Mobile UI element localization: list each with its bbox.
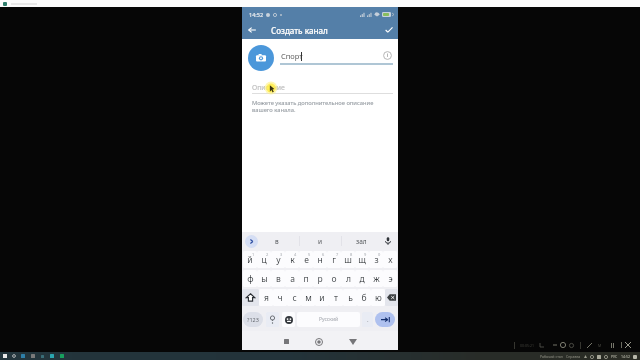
staticText: м — [305, 292, 312, 304]
button[interactable]: б — [357, 289, 371, 306]
staticText: ш — [344, 254, 352, 266]
staticText: РУС — [611, 354, 618, 359]
button[interactable]: р — [313, 270, 327, 287]
staticText: Описание — [252, 83, 285, 92]
other: Crop — [539, 343, 544, 348]
button[interactable]: Info — [381, 49, 393, 61]
staticText: п — [303, 273, 309, 285]
staticText: Можете указать дополнительное описание в… — [252, 99, 374, 114]
button[interactable]: Recents — [276, 331, 296, 350]
button[interactable]: о — [327, 270, 341, 287]
button[interactable]: Shift — [242, 289, 259, 306]
staticText: о — [331, 273, 337, 285]
button[interactable]: э — [383, 270, 397, 287]
staticText: в — [275, 237, 279, 246]
button[interactable]: Expand suggestions — [244, 232, 258, 250]
staticText: 6 — [322, 252, 325, 257]
staticText: Рабочий стол — [540, 354, 563, 359]
button[interactable]: Set channel photo — [248, 45, 274, 71]
button[interactable]: я — [259, 289, 273, 306]
staticText: в — [276, 273, 281, 285]
button[interactable]: д — [355, 270, 369, 287]
staticText: 14:52 — [249, 11, 264, 18]
staticText: и — [318, 237, 323, 246]
button[interactable]: в — [266, 232, 288, 250]
button[interactable]: . — [362, 312, 373, 327]
staticText: ж — [373, 273, 380, 285]
button[interactable]: а — [285, 270, 299, 287]
button[interactable]: зал — [350, 232, 372, 250]
button[interactable]: ц — [257, 251, 271, 268]
button[interactable]: Settings — [266, 312, 279, 327]
button[interactable]: Back — [343, 331, 363, 350]
button[interactable]: в — [271, 270, 285, 287]
staticText: э — [388, 273, 393, 285]
button[interactable]: Emoji — [282, 312, 295, 327]
button[interactable]: ь — [343, 289, 357, 306]
staticText: а — [290, 273, 295, 285]
staticText: у — [276, 254, 281, 266]
button[interactable]: з — [369, 251, 383, 268]
staticText: е — [304, 254, 309, 266]
button[interactable]: Voice input — [381, 232, 395, 250]
staticText: й — [247, 254, 253, 266]
button[interactable]: ?123 — [243, 312, 263, 327]
button[interactable]: Back — [242, 21, 262, 39]
staticText: я — [264, 292, 269, 304]
button[interactable]: у — [271, 251, 285, 268]
staticText: 4 — [294, 252, 297, 257]
button[interactable]: ж — [369, 270, 383, 287]
staticText: с — [292, 292, 297, 304]
button[interactable]: е — [299, 251, 313, 268]
button[interactable]: г — [327, 251, 341, 268]
button[interactable]: ш — [341, 251, 355, 268]
button[interactable]: Done — [380, 21, 398, 39]
staticText: 8 — [350, 252, 353, 257]
button[interactable]: с — [287, 289, 301, 306]
staticText: р — [317, 273, 323, 285]
button[interactable]: ы — [257, 270, 271, 287]
staticText: ц — [261, 254, 267, 266]
staticText: ч — [277, 292, 283, 304]
button[interactable]: н — [313, 251, 327, 268]
staticText: б — [361, 292, 367, 304]
button[interactable]: ф — [243, 270, 257, 287]
staticText: ы — [261, 273, 268, 285]
staticText: . — [367, 316, 369, 324]
button[interactable]: м — [301, 289, 315, 306]
button[interactable]: й — [243, 251, 257, 268]
staticText: х — [388, 254, 393, 266]
staticText: 9 — [364, 252, 367, 257]
other: Settings — [569, 343, 574, 348]
staticText: Справка — [566, 354, 581, 359]
button[interactable]: Enter — [375, 312, 395, 327]
staticText: 00:05:21 — [520, 343, 534, 348]
button[interactable]: и — [309, 232, 331, 250]
staticText: т — [334, 292, 338, 304]
staticText: 1 — [252, 252, 255, 257]
button[interactable]: х — [383, 251, 397, 268]
staticText: 0 — [378, 252, 381, 257]
staticText: щ — [358, 254, 366, 266]
button[interactable]: л — [341, 270, 355, 287]
staticText: M — [598, 343, 602, 348]
button[interactable]: к — [285, 251, 299, 268]
other: Close — [625, 342, 631, 348]
other: Volume — [560, 342, 566, 348]
button[interactable]: щ — [355, 251, 369, 268]
staticText: д — [359, 273, 365, 285]
staticText: зал — [356, 237, 367, 246]
staticText: ?123 — [247, 316, 259, 323]
button[interactable]: ю — [371, 289, 385, 306]
button[interactable]: и — [315, 289, 329, 306]
button[interactable]: Backspace — [385, 289, 398, 306]
staticText: 3 — [280, 252, 283, 257]
button[interactable]: ч — [273, 289, 287, 306]
button[interactable]: п — [299, 270, 313, 287]
staticText: ю — [375, 292, 382, 304]
button[interactable]: т — [329, 289, 343, 306]
button[interactable]: Home — [309, 331, 329, 350]
staticText: л — [346, 273, 351, 285]
other: Subtitles — [553, 343, 557, 347]
button[interactable]: Русский — [297, 312, 360, 327]
